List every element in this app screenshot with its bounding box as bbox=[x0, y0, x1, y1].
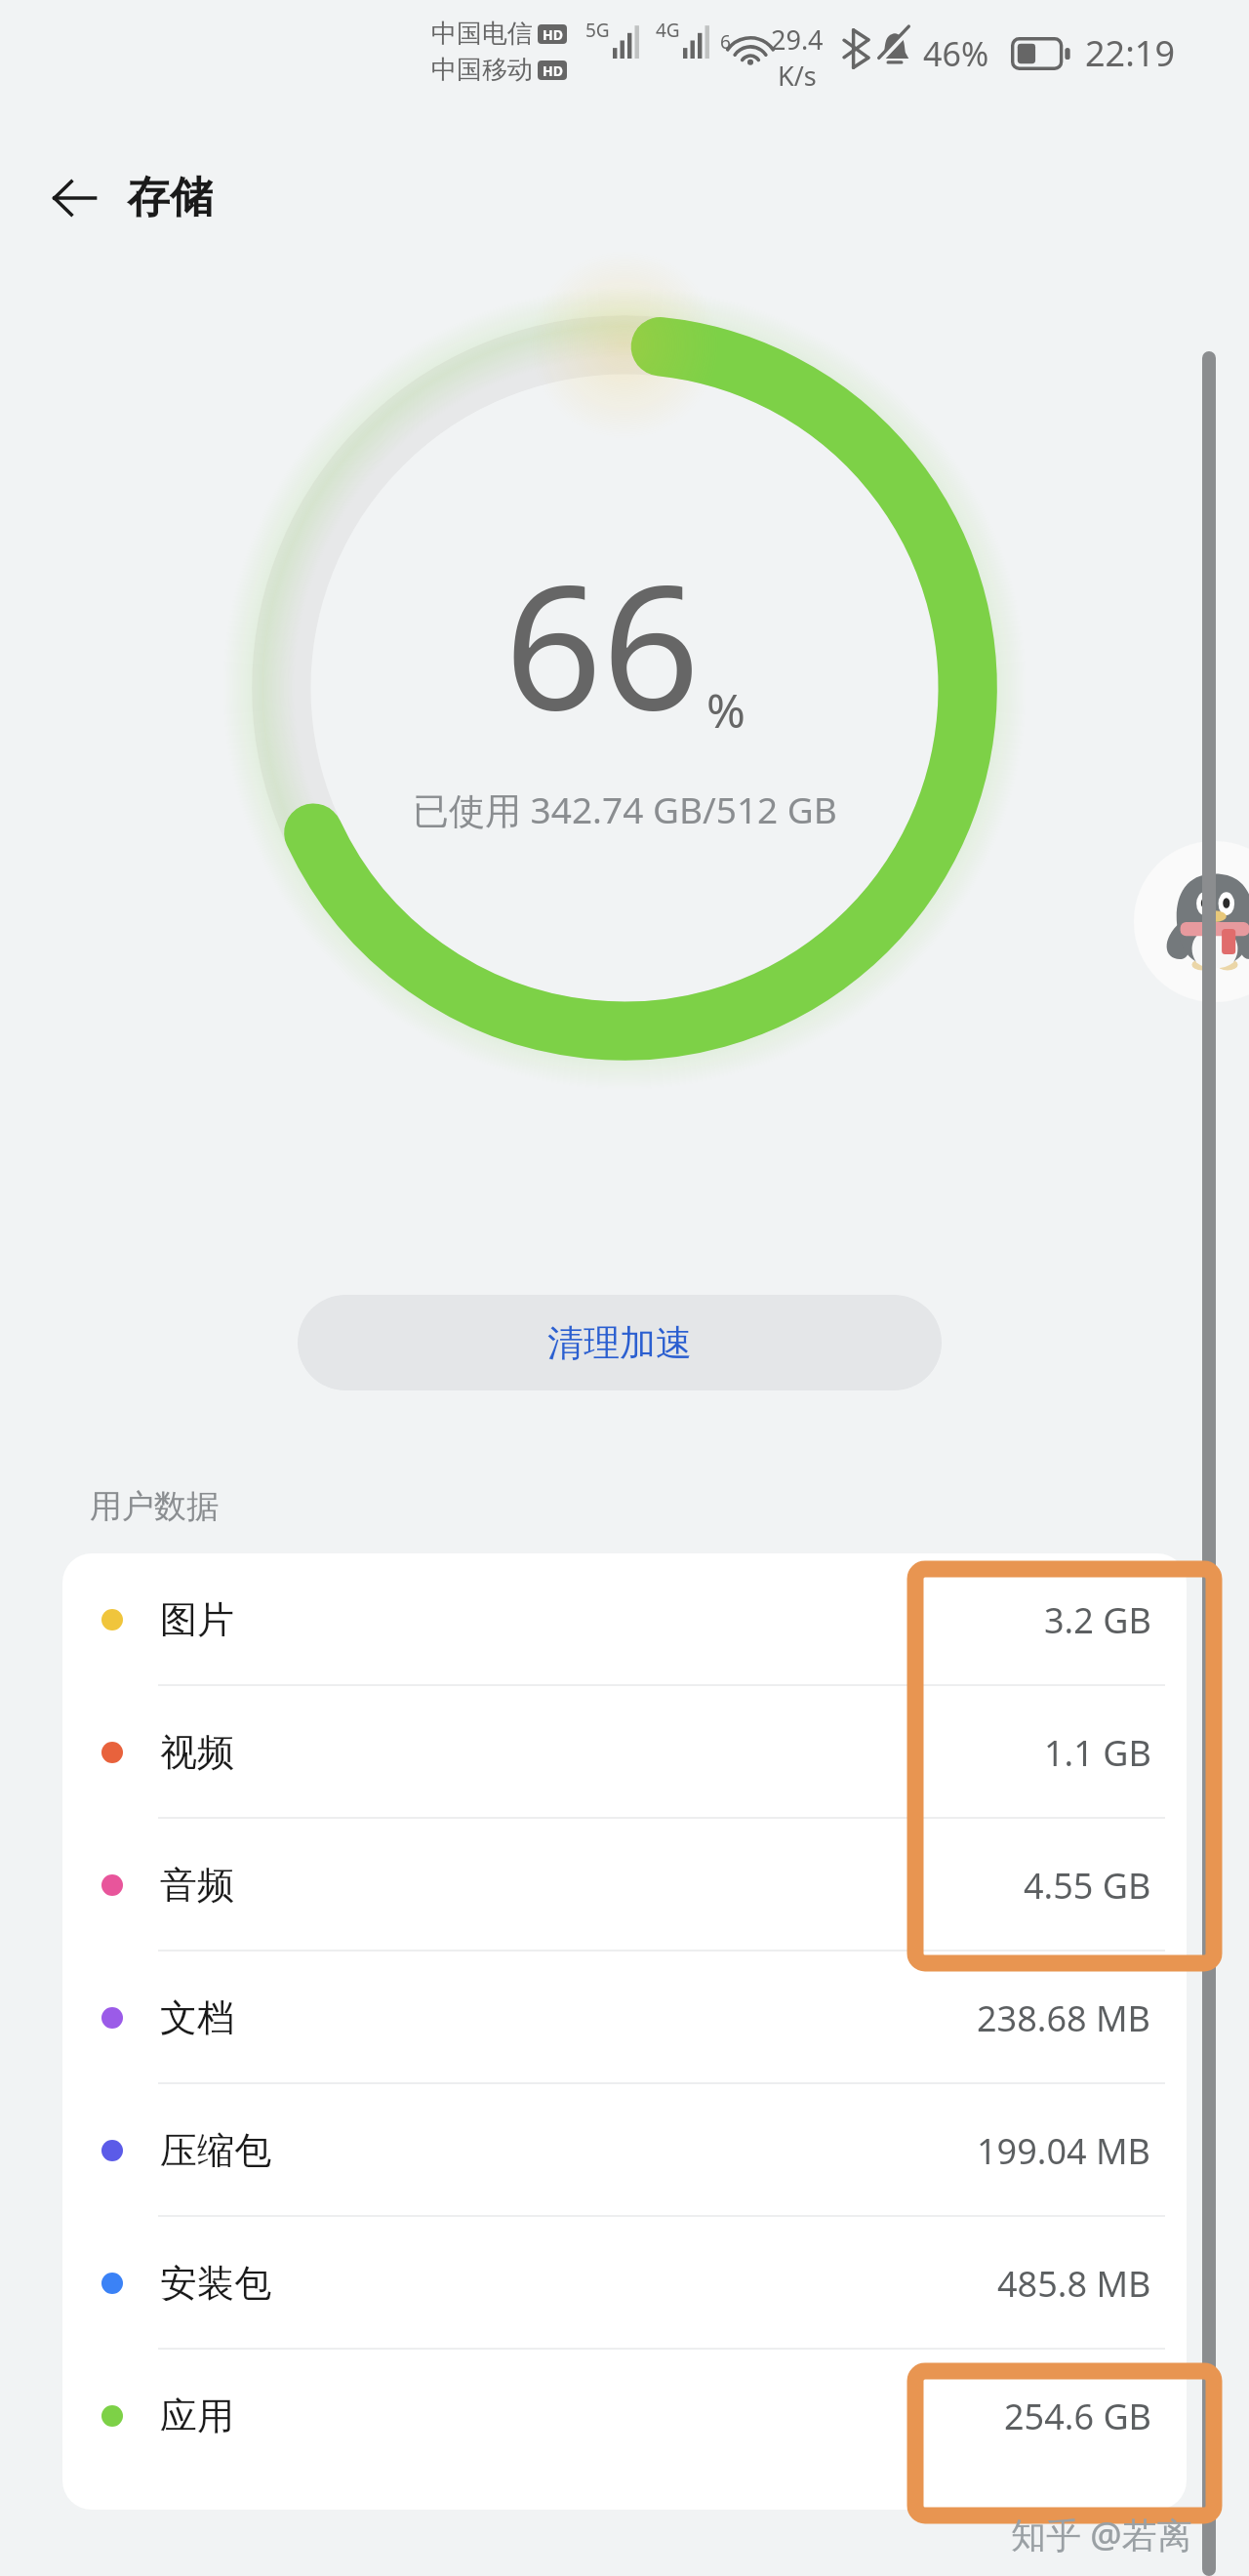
button[interactable]: 压缩包 bbox=[62, 2084, 1187, 2217]
staticText: 3.2 GB bbox=[1044, 1596, 1151, 1644]
button[interactable]: 应用 bbox=[62, 2350, 1187, 2482]
staticText: 知乎 @若离 bbox=[1011, 2511, 1192, 2558]
staticText: % bbox=[706, 678, 745, 742]
staticText: HD bbox=[543, 61, 563, 80]
button[interactable]: 视频 bbox=[62, 1686, 1187, 1819]
staticText: 254.6 GB bbox=[1004, 2393, 1151, 2440]
button[interactable]: 清理加速 bbox=[298, 1295, 942, 1390]
button[interactable]: 图片 bbox=[62, 1553, 1187, 1686]
staticText: 存储 bbox=[127, 171, 213, 224]
staticText: 4.55 GB bbox=[1024, 1862, 1151, 1910]
staticText: 199.04 MB bbox=[977, 2127, 1151, 2175]
staticText: 已使用 342.74 GB/512 GB bbox=[413, 785, 837, 834]
staticText: 22:19 bbox=[1085, 29, 1176, 77]
staticText: 图片 bbox=[160, 1596, 234, 1643]
staticText: 5G bbox=[585, 18, 610, 43]
staticText: 1.1 GB bbox=[1044, 1729, 1151, 1777]
staticText: 46% bbox=[923, 31, 989, 76]
staticText: 视频 bbox=[160, 1729, 234, 1776]
staticText: 应用 bbox=[160, 2393, 234, 2439]
button[interactable]: QQ bbox=[1134, 841, 1249, 1002]
staticText: 6 bbox=[720, 29, 731, 55]
staticText: 用户数据 bbox=[90, 1486, 219, 1527]
staticText: 压缩包 bbox=[160, 2127, 271, 2174]
staticText: 清理加速 bbox=[547, 1320, 692, 1366]
staticText: 中国移动 bbox=[431, 54, 533, 86]
staticText: K/s bbox=[778, 58, 817, 94]
staticText: HD bbox=[543, 25, 563, 44]
staticText: 中国电信 bbox=[431, 18, 533, 50]
staticText: 4G bbox=[656, 18, 680, 43]
staticText: 音频 bbox=[160, 1862, 234, 1909]
button[interactable]: Back bbox=[35, 159, 113, 237]
staticText: 485.8 MB bbox=[997, 2260, 1151, 2308]
button[interactable]: 文档 bbox=[62, 1952, 1187, 2084]
staticText: 238.68 MB bbox=[977, 1994, 1151, 2042]
staticText: 文档 bbox=[160, 1994, 234, 2041]
staticText: 66 bbox=[504, 527, 701, 759]
button[interactable]: 安装包 bbox=[62, 2217, 1187, 2350]
staticText: 29.4 bbox=[771, 21, 824, 58]
staticText: 安装包 bbox=[160, 2260, 271, 2307]
button[interactable]: 音频 bbox=[62, 1819, 1187, 1952]
